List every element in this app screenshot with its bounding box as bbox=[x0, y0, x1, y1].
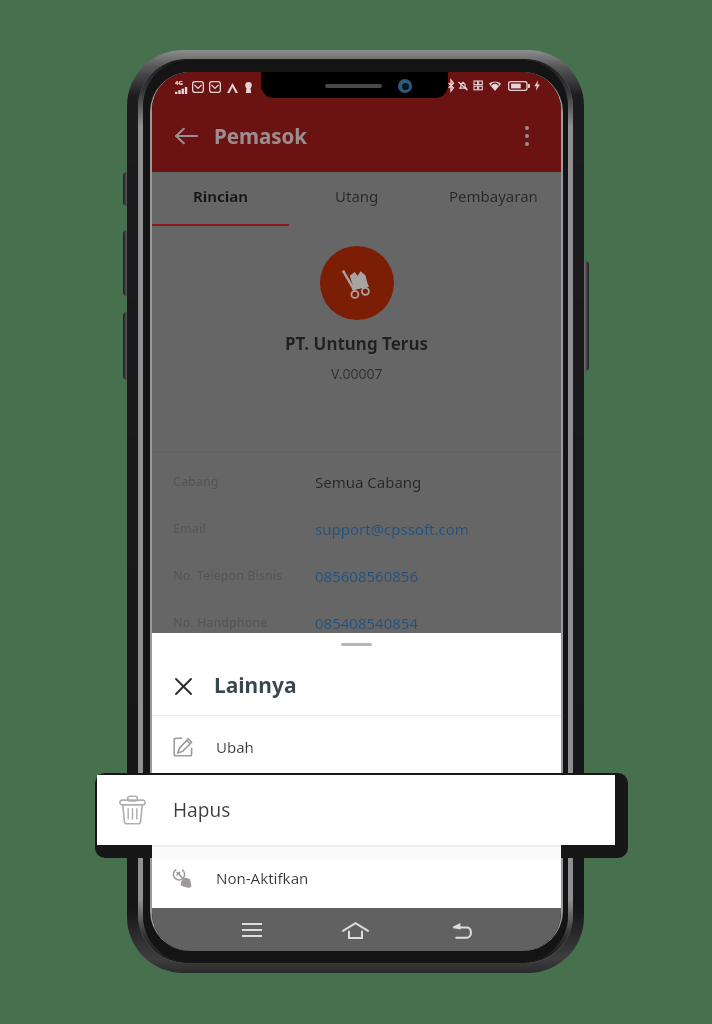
staticText: Hapus bbox=[173, 797, 231, 823]
button[interactable]: Non-Aktifkan bbox=[152, 847, 561, 908]
staticText: 085408540854 bbox=[315, 613, 418, 633]
button[interactable]: Pembayaran bbox=[425, 172, 561, 226]
staticText: No. Handphone bbox=[173, 614, 315, 631]
button[interactable]: Recent apps bbox=[231, 909, 273, 951]
staticText: No. Telepon Bisnis bbox=[173, 567, 315, 584]
staticText: Lainnya bbox=[214, 671, 297, 700]
staticText: PT. Untung Terus bbox=[285, 332, 429, 354]
staticText: 4G bbox=[175, 79, 183, 87]
button[interactable]: Hapus bbox=[97, 775, 615, 845]
staticText: Ubah bbox=[216, 737, 254, 757]
button[interactable]: Home bbox=[334, 909, 376, 951]
button[interactable]: Back bbox=[441, 909, 483, 951]
staticText: Utang bbox=[335, 186, 379, 206]
staticText: 085608560856 bbox=[315, 566, 418, 586]
button[interactable]: Close bbox=[169, 672, 197, 700]
button[interactable]: Back bbox=[168, 118, 204, 154]
staticText: Pembayaran bbox=[449, 186, 538, 206]
staticText: support@cpssoft.com bbox=[315, 519, 469, 539]
staticText: V.00007 bbox=[331, 364, 383, 382]
staticText: Non-Aktifkan bbox=[216, 868, 309, 888]
staticText: Pemasok bbox=[214, 122, 308, 150]
staticText: Rincian bbox=[193, 186, 249, 206]
staticText: Semua Cabang bbox=[315, 472, 422, 492]
button[interactable]: Utang bbox=[289, 172, 425, 226]
staticText: Cabang bbox=[173, 473, 315, 490]
button[interactable]: Rincian bbox=[152, 172, 289, 226]
button[interactable]: Ubah bbox=[152, 716, 561, 777]
button[interactable]: More options bbox=[509, 118, 545, 154]
